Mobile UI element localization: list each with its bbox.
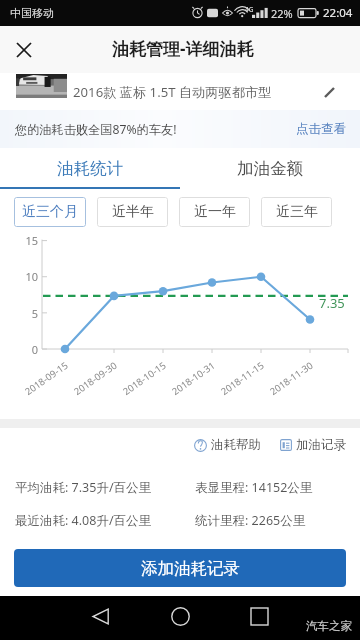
button[interactable]: 近一年 xyxy=(179,197,250,227)
button[interactable]: 加油金额 xyxy=(180,148,360,189)
staticText: 汽车之家 xyxy=(306,619,352,633)
staticText: 2018-10-31 xyxy=(168,358,218,399)
button[interactable]: 添加油耗记录 xyxy=(14,549,346,587)
button[interactable]: 油耗统计 xyxy=(0,148,180,189)
button[interactable]: 您的油耗击败全国87%的车友! xyxy=(0,110,360,148)
staticText: 2018-10-15 xyxy=(119,358,169,399)
staticText: 添加油耗记录 xyxy=(141,558,240,579)
staticText: 统计里程: 2265公里 xyxy=(195,512,306,529)
staticText: 22:04 xyxy=(323,5,353,21)
staticText: 5 xyxy=(14,306,38,321)
button[interactable]: 加油记录 xyxy=(280,433,346,457)
button[interactable]: 近三年 xyxy=(261,197,332,227)
staticText: 表显里程: 14152公里 xyxy=(195,479,313,496)
staticText: 2018-09-30 xyxy=(70,358,120,399)
staticText: 15 xyxy=(14,233,38,248)
staticText: 近一年 xyxy=(194,203,236,221)
button[interactable]: Back xyxy=(85,601,115,631)
button[interactable]: Recents xyxy=(244,601,274,631)
button[interactable]: 近三个月 xyxy=(14,197,86,227)
button[interactable]: Home xyxy=(165,601,195,631)
staticText: 油耗统计 xyxy=(57,158,123,179)
staticText: 您的油耗击败全国87%的车友! xyxy=(15,121,177,138)
staticText: 10 xyxy=(14,269,38,284)
staticText: 22% xyxy=(271,6,293,21)
staticText: 0 xyxy=(14,342,38,357)
staticText: 近半年 xyxy=(112,203,154,221)
button[interactable]: Close xyxy=(9,35,39,65)
staticText: 加油金额 xyxy=(237,158,303,179)
staticText: 2016款 蓝标 1.5T 自动两驱都市型 xyxy=(73,83,272,101)
staticText: 加油记录 xyxy=(296,437,346,453)
staticText: 近三个月 xyxy=(22,203,78,221)
staticText: 7.35 xyxy=(319,294,345,312)
button[interactable]: Edit xyxy=(320,83,338,101)
button[interactable]: 油耗帮助 xyxy=(194,433,261,457)
button[interactable]: 近半年 xyxy=(97,197,168,227)
staticText: 油耗管理-详细油耗 xyxy=(112,37,254,60)
staticText: 点击查看 xyxy=(296,121,346,137)
staticText: 中国移动 xyxy=(10,6,54,20)
staticText: 2018-11-30 xyxy=(266,358,316,399)
staticText: 2018-11-15 xyxy=(217,358,267,399)
staticText: 4G xyxy=(245,5,254,14)
staticText: 最近油耗: 4.08升/百公里 xyxy=(15,512,152,529)
staticText: 2018-09-15 xyxy=(21,358,71,399)
staticText: 平均油耗: 7.35升/百公里 xyxy=(15,479,152,496)
staticText: 近三年 xyxy=(276,203,318,221)
staticText: 油耗帮助 xyxy=(211,437,261,453)
